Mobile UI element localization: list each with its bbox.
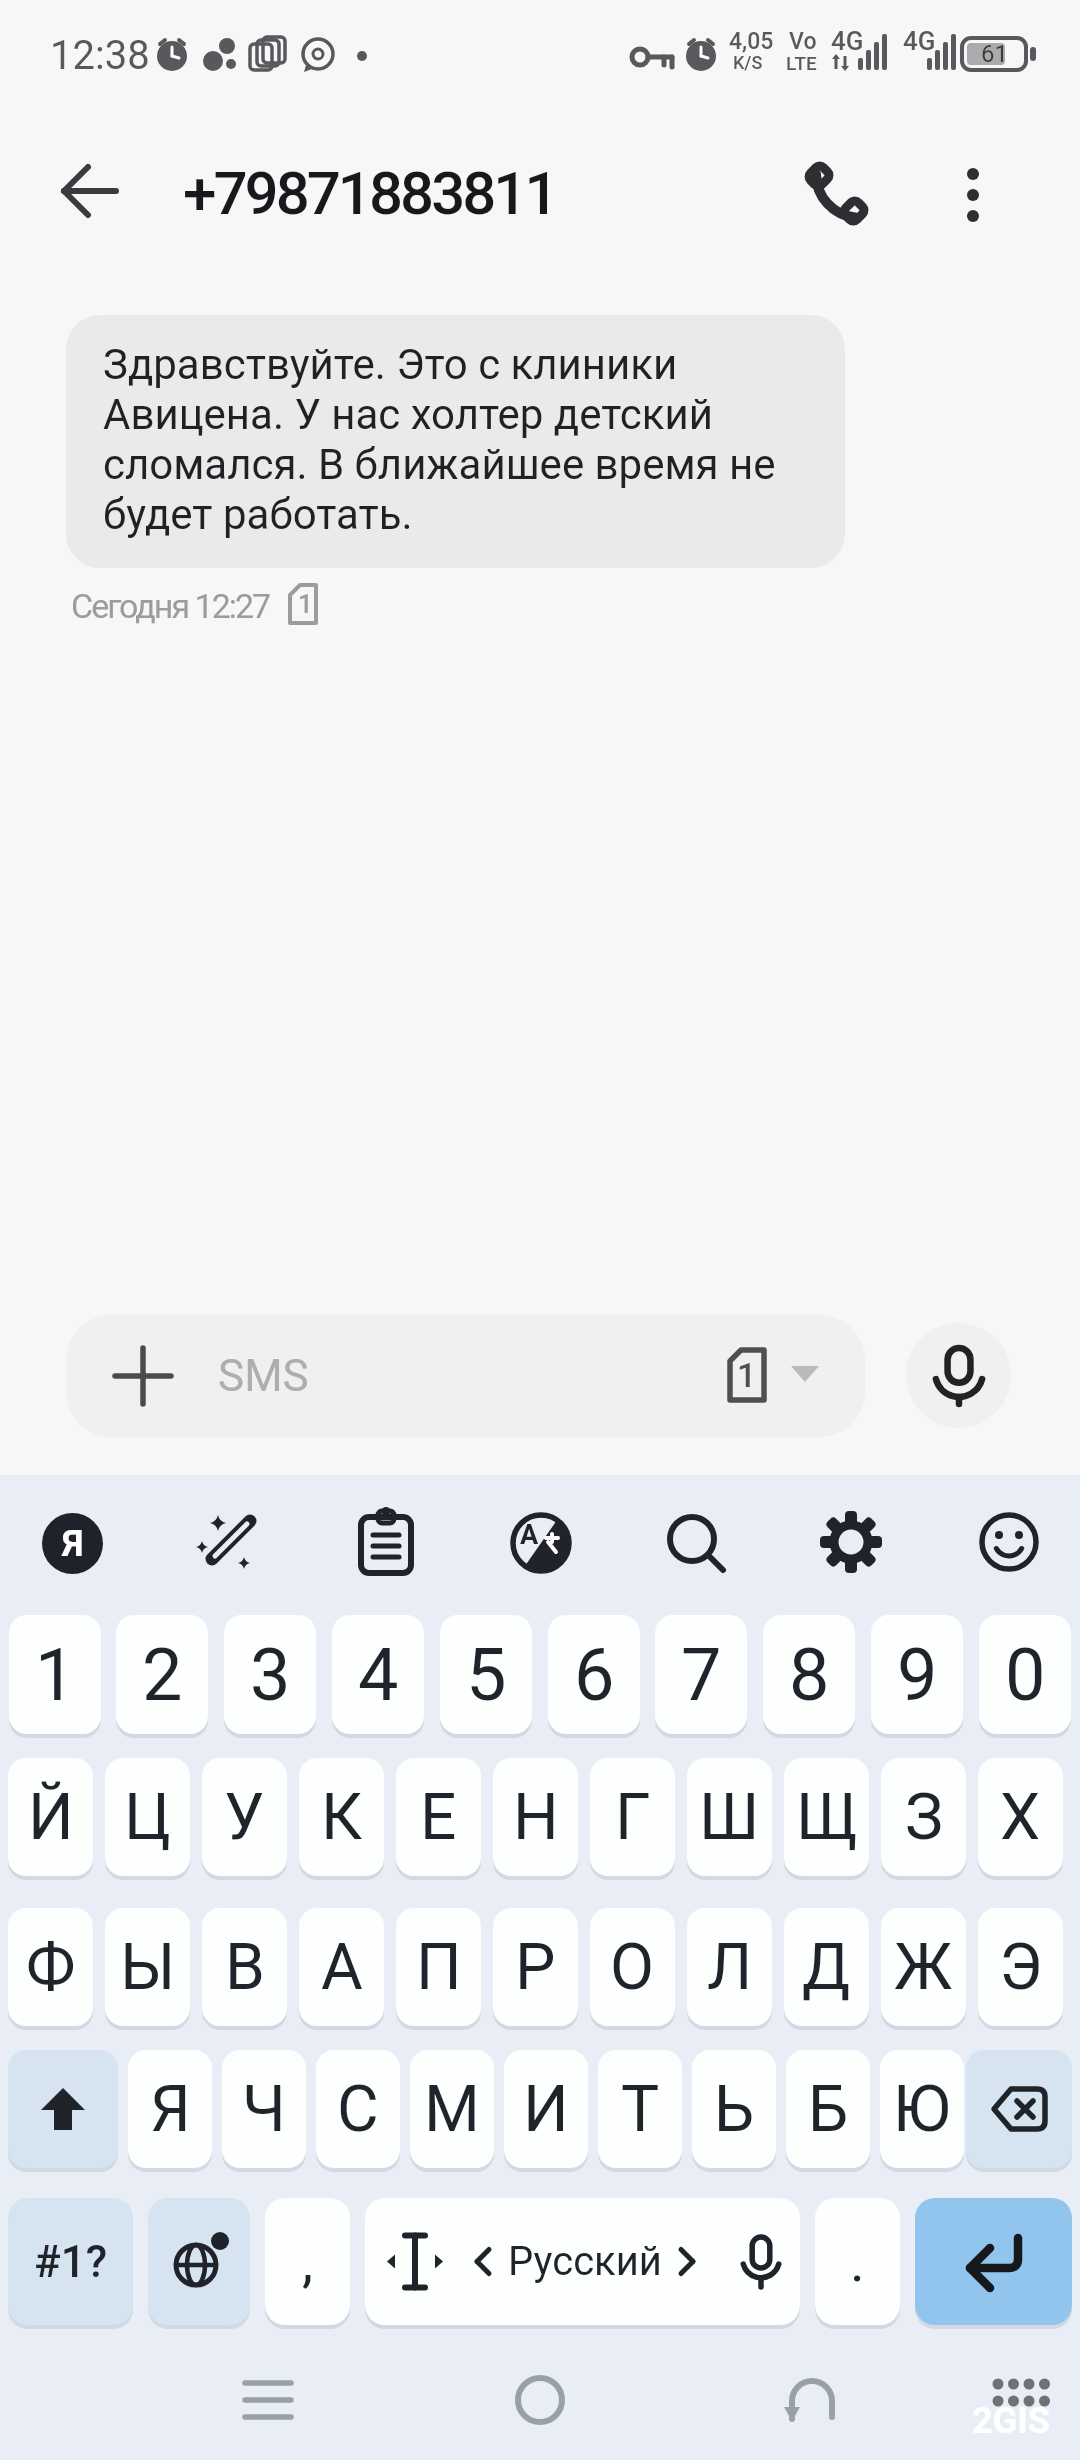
button[interactable]: Я	[128, 2050, 212, 2168]
staticText: 8	[789, 1633, 830, 1717]
button[interactable]: Ж	[881, 1908, 966, 2026]
button[interactable]: ,	[265, 2198, 350, 2325]
button[interactable]: Р	[493, 1908, 578, 2026]
button[interactable]: Е	[396, 1758, 481, 1876]
button[interactable]: А	[299, 1908, 384, 2026]
button[interactable]	[790, 155, 880, 235]
staticText: 9	[897, 1633, 938, 1717]
staticText: 4	[358, 1633, 399, 1717]
button[interactable]: Д	[784, 1908, 869, 2026]
button[interactable]: Г	[590, 1758, 675, 1876]
button[interactable]: Н	[493, 1758, 578, 1876]
button[interactable]	[966, 2050, 1072, 2168]
button[interactable]: Я	[42, 1513, 103, 1574]
button[interactable]: Ь	[692, 2050, 776, 2168]
button[interactable]	[935, 155, 1010, 235]
staticText: К	[321, 1780, 363, 1855]
staticText: Щ	[796, 1780, 858, 1855]
button[interactable]: 6	[548, 1615, 640, 1734]
staticText: Р	[515, 1930, 556, 2005]
staticText: 61	[981, 40, 1008, 68]
staticText: +79871883811	[183, 158, 556, 228]
staticText: ,	[302, 2229, 314, 2295]
button[interactable]: 0	[979, 1615, 1071, 1734]
button[interactable]: Русский	[365, 2198, 800, 2325]
button[interactable]	[505, 2365, 575, 2435]
staticText: Я	[62, 1523, 84, 1565]
staticText: 4G	[903, 26, 936, 56]
staticText: Ч	[242, 2072, 286, 2147]
staticText: Й	[28, 1780, 74, 1855]
staticText: Ц	[124, 1780, 171, 1855]
button[interactable]: О	[590, 1908, 675, 2026]
button[interactable]: К	[299, 1758, 384, 1876]
staticText: П	[416, 1930, 462, 2005]
staticText: Л	[707, 1930, 753, 2005]
button[interactable]: П	[396, 1908, 481, 2026]
button[interactable]: Ф	[8, 1908, 93, 2026]
button[interactable]: 7	[655, 1615, 747, 1734]
button[interactable]: Ч	[222, 2050, 306, 2168]
button[interactable]	[663, 1510, 729, 1576]
staticText: У	[224, 1780, 265, 1855]
button[interactable]: Т	[598, 2050, 682, 2168]
button[interactable]: Ш	[687, 1758, 772, 1876]
button[interactable]	[777, 2365, 847, 2435]
button[interactable]: В	[202, 1908, 287, 2026]
button[interactable]	[8, 2050, 118, 2168]
staticText: 5	[466, 1633, 507, 1717]
button[interactable]	[148, 2198, 250, 2325]
staticText: 6	[574, 1633, 615, 1717]
staticText: Vo	[789, 28, 817, 55]
button[interactable]: .	[815, 2198, 900, 2325]
button[interactable]: Здравствуйте. Это с клиники Авицена. У н…	[66, 315, 845, 568]
button[interactable]: #1?	[8, 2198, 133, 2325]
button[interactable]: Б	[786, 2050, 870, 2168]
staticText: З	[905, 1780, 943, 1855]
staticText: Э	[999, 1930, 1043, 2005]
button[interactable]	[352, 1507, 420, 1575]
button[interactable]: 3	[224, 1615, 316, 1734]
staticText: Я	[150, 2072, 191, 2147]
button[interactable]	[977, 1510, 1041, 1574]
button[interactable]: Ы	[105, 1908, 190, 2026]
button[interactable]	[230, 2365, 306, 2435]
button[interactable]: Ц	[105, 1758, 190, 1876]
button[interactable]	[194, 1509, 262, 1577]
staticText: 3	[250, 1633, 291, 1717]
staticText: В	[225, 1930, 265, 2005]
staticText: Ш	[699, 1780, 760, 1855]
button[interactable]: 4	[332, 1615, 424, 1734]
button[interactable]: У	[202, 1758, 287, 1876]
button[interactable]: Л	[687, 1908, 772, 2026]
button[interactable]: З	[881, 1758, 966, 1876]
button[interactable]: С	[316, 2050, 400, 2168]
staticText: 4,05	[729, 28, 774, 55]
button[interactable]: Й	[8, 1758, 93, 1876]
button[interactable]: 2	[116, 1615, 208, 1734]
button[interactable]: Ю	[880, 2050, 964, 2168]
button[interactable]	[906, 1323, 1011, 1428]
staticText: SMS	[218, 1350, 309, 1402]
button[interactable]	[48, 156, 132, 228]
button[interactable]	[817, 1508, 885, 1576]
button[interactable]: 5	[440, 1615, 532, 1734]
button[interactable]: И	[504, 2050, 588, 2168]
button[interactable]: 9	[871, 1615, 963, 1734]
button[interactable]	[66, 1315, 865, 1437]
button[interactable]: М	[410, 2050, 494, 2168]
staticText: 2	[142, 1633, 183, 1717]
button[interactable]: Э	[978, 1908, 1063, 2026]
staticText: Ь	[714, 2072, 755, 2147]
staticText: Русский	[508, 2238, 662, 2285]
button[interactable]: Х	[978, 1758, 1063, 1876]
button[interactable]	[915, 2198, 1072, 2325]
staticText: Сегодня 12:27	[71, 586, 270, 626]
staticText: Д	[802, 1930, 851, 2005]
button[interactable]: 8	[763, 1615, 855, 1734]
button[interactable]: A	[508, 1510, 574, 1576]
staticText: Т	[621, 2072, 660, 2147]
staticText: A	[520, 1519, 539, 1551]
button[interactable]: 1	[9, 1615, 101, 1734]
button[interactable]: Щ	[784, 1758, 869, 1876]
